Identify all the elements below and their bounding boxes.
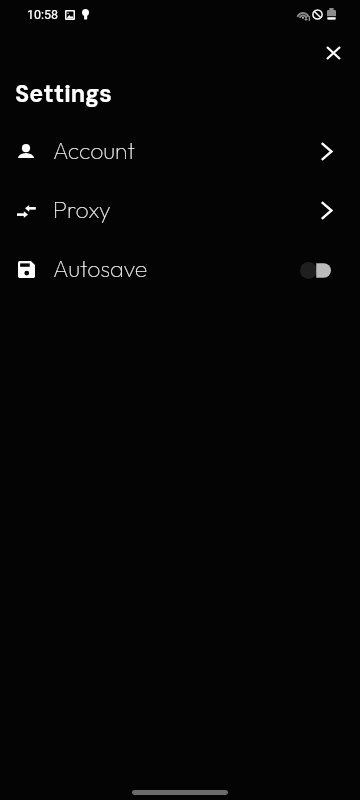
button[interactable]: Close bbox=[314, 33, 351, 70]
staticText: Account bbox=[53, 136, 136, 165]
button[interactable]: Proxy bbox=[0, 181, 360, 240]
button[interactable]: Account bbox=[0, 122, 360, 181]
staticText: Proxy bbox=[53, 195, 111, 224]
button[interactable]: Autosave toggle bbox=[296, 256, 340, 284]
staticText: Autosave bbox=[53, 254, 148, 283]
button[interactable]: Autosave bbox=[0, 240, 360, 299]
staticText: Settings bbox=[15, 79, 112, 109]
staticText: 10:58 bbox=[27, 7, 59, 22]
